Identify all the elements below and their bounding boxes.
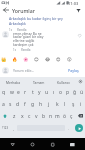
staticText: Yanıtla xyxy=(17,28,27,32)
staticText: ı xyxy=(53,89,55,96)
button[interactable]: React xyxy=(45,55,56,64)
staticText: e xyxy=(17,89,20,96)
button[interactable]: e xyxy=(15,86,22,98)
staticText: l xyxy=(64,101,66,108)
button[interactable]: React xyxy=(1,55,12,64)
button[interactable]: h xyxy=(37,98,45,110)
staticText: y xyxy=(38,89,41,96)
button[interactable]: Merhaba xyxy=(0,77,26,86)
staticText: g xyxy=(31,101,35,108)
button[interactable]: Arkadaşlık bu kadar ilginç bir şey xyxy=(0,14,85,32)
button[interactable]: Back xyxy=(0,6,11,14)
button[interactable]: emre.yilmaz Bu ne kadar güzel bir olay e… xyxy=(0,31,85,52)
staticText: h xyxy=(39,101,43,108)
button[interactable]: p xyxy=(64,86,71,98)
button[interactable]: , xyxy=(10,122,17,134)
button[interactable]: ö xyxy=(61,110,68,122)
button[interactable]: ç xyxy=(68,110,75,122)
button[interactable]: b xyxy=(40,110,47,122)
staticText: ü xyxy=(80,89,84,96)
button[interactable]: v xyxy=(33,110,40,122)
staticText: 😍 xyxy=(56,57,61,62)
button[interactable]: Back xyxy=(7,139,17,149)
staticText: x xyxy=(21,113,24,120)
staticText: 1s xyxy=(13,48,17,52)
button[interactable]: r xyxy=(22,86,29,98)
button[interactable]: Keyboard options xyxy=(76,77,85,86)
staticText: z xyxy=(13,113,16,120)
staticText: 😊 xyxy=(34,57,39,62)
button[interactable]: o xyxy=(57,86,64,98)
button[interactable]: g xyxy=(29,98,37,110)
staticText: c xyxy=(28,113,31,120)
button[interactable]: Shift xyxy=(0,110,10,122)
staticText: . xyxy=(68,126,69,131)
button[interactable]: Tamam xyxy=(26,77,51,86)
button[interactable]: f xyxy=(21,98,29,110)
staticText: ?123 xyxy=(2,126,9,130)
staticText: Paylaş xyxy=(68,68,79,73)
button[interactable]: ?123 xyxy=(0,122,10,134)
staticText: d xyxy=(16,101,20,108)
button[interactable]: Filter comments xyxy=(72,6,85,14)
staticText: s xyxy=(9,101,12,108)
button[interactable]: ü xyxy=(78,86,85,98)
button[interactable]: Kullanıcı xyxy=(51,77,76,86)
button[interactable]: Like xyxy=(77,33,82,38)
button[interactable]: Send xyxy=(72,122,85,134)
button[interactable]: a xyxy=(0,98,7,110)
staticText: 😂 xyxy=(45,57,51,62)
staticText: t xyxy=(32,89,34,96)
staticText: 😮 xyxy=(67,57,72,62)
staticText: a xyxy=(2,101,5,108)
staticText: k xyxy=(56,101,59,108)
button[interactable]: j xyxy=(45,98,53,110)
button[interactable]: Recents xyxy=(47,139,57,149)
button[interactable]: k xyxy=(53,98,61,110)
button[interactable]: Hide keyboard xyxy=(67,139,77,149)
staticText: q xyxy=(2,89,6,96)
staticText: o xyxy=(59,89,63,96)
staticText: m xyxy=(55,113,60,120)
button[interactable]: d xyxy=(14,98,21,110)
button[interactable]: ğ xyxy=(71,86,78,98)
button[interactable]: c xyxy=(26,110,33,122)
staticText: p xyxy=(66,89,70,96)
button[interactable]: React xyxy=(34,55,45,64)
button[interactable]: l xyxy=(61,98,69,110)
button[interactable]: y xyxy=(36,86,43,98)
button[interactable]: React xyxy=(67,55,78,64)
button[interactable]: u xyxy=(43,86,50,98)
staticText: r xyxy=(24,89,27,96)
button[interactable]: Paylaş xyxy=(62,64,85,77)
staticText: 👑 xyxy=(1,57,7,62)
button[interactable]: React xyxy=(12,55,23,64)
button[interactable]: n xyxy=(47,110,54,122)
staticText: 1s xyxy=(9,28,13,32)
button[interactable]: Yorum ekle... xyxy=(13,64,62,77)
button[interactable]: s xyxy=(7,98,14,110)
staticText: Merhaba xyxy=(6,80,20,84)
staticText: ğ xyxy=(73,89,77,96)
button[interactable]: z xyxy=(10,110,18,122)
button[interactable]: Backspace xyxy=(75,110,85,122)
button[interactable]: ı xyxy=(50,86,57,98)
button[interactable]: Home xyxy=(27,139,37,149)
button[interactable]: React xyxy=(23,55,34,64)
staticText: ç xyxy=(70,113,73,120)
button[interactable]: ş xyxy=(69,98,77,110)
staticText: Yorum ekle... xyxy=(13,68,35,73)
staticText: b xyxy=(42,113,46,120)
button[interactable]: React xyxy=(56,55,67,64)
button[interactable]: i xyxy=(77,98,85,110)
button[interactable]: w xyxy=(8,86,15,98)
staticText: ö xyxy=(63,113,67,120)
staticText: i xyxy=(80,101,82,108)
button[interactable]: t xyxy=(29,86,36,98)
button[interactable]: q xyxy=(0,86,8,98)
button[interactable]: m xyxy=(54,110,61,122)
button[interactable]: x xyxy=(18,110,26,122)
staticText: Kullanıcı xyxy=(57,80,70,84)
